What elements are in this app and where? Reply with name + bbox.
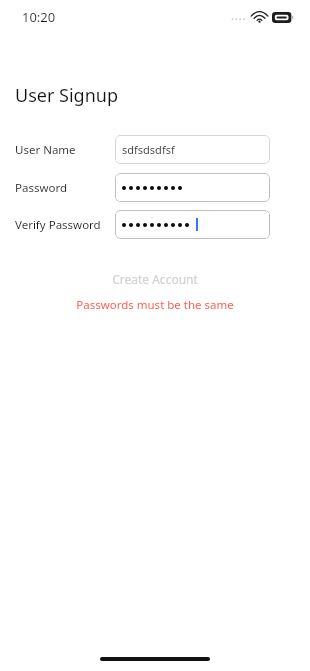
button[interactable]: Create Account (0, 268, 310, 290)
staticText: Verify Password (15, 217, 101, 233)
staticText: Passwords must be the same (76, 297, 234, 313)
staticText: 10:20 (22, 8, 56, 26)
staticText: Create Account (112, 271, 198, 287)
button[interactable]: sdfsdsdfsf (115, 135, 270, 164)
staticText: User Name (15, 142, 76, 158)
staticText: sdfsdsdfsf (122, 142, 175, 157)
staticText: User Signup (15, 83, 118, 108)
button[interactable] (115, 210, 270, 239)
staticText: Password (15, 180, 68, 196)
button[interactable] (115, 173, 270, 202)
